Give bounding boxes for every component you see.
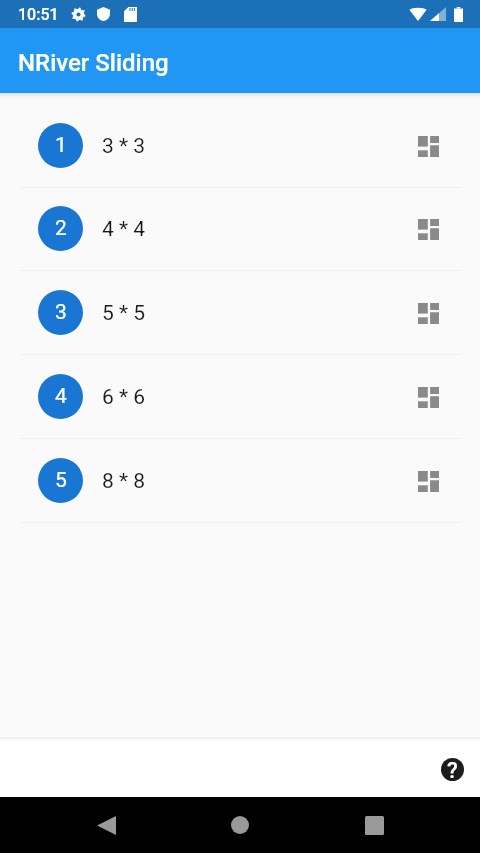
staticText: 5 * 5 bbox=[102, 301, 146, 326]
staticText: 3 * 3 bbox=[102, 134, 146, 159]
button[interactable]: Home bbox=[216, 801, 264, 849]
button[interactable]: Recents bbox=[350, 801, 398, 849]
staticText: NRiver Sliding bbox=[18, 49, 169, 77]
staticText: 2 bbox=[55, 216, 67, 241]
staticText: 10:51 bbox=[18, 5, 59, 24]
staticText: 5 bbox=[55, 468, 67, 493]
button[interactable]: Help bbox=[441, 758, 464, 781]
staticText: ? bbox=[447, 758, 458, 781]
staticText: 8 * 8 bbox=[102, 469, 146, 494]
button[interactable]: 4 bbox=[0, 355, 480, 439]
button[interactable]: 3 bbox=[0, 271, 480, 355]
button[interactable]: 2 bbox=[0, 188, 480, 271]
staticText: 6 * 6 bbox=[102, 385, 146, 410]
button[interactable]: Back bbox=[82, 801, 130, 849]
button[interactable]: 1 bbox=[0, 104, 480, 188]
staticText: 1 bbox=[55, 133, 67, 158]
button[interactable]: 5 bbox=[0, 439, 480, 523]
staticText: 4 bbox=[55, 384, 67, 409]
staticText: 3 bbox=[55, 300, 67, 325]
staticText: 4 * 4 bbox=[102, 217, 146, 242]
